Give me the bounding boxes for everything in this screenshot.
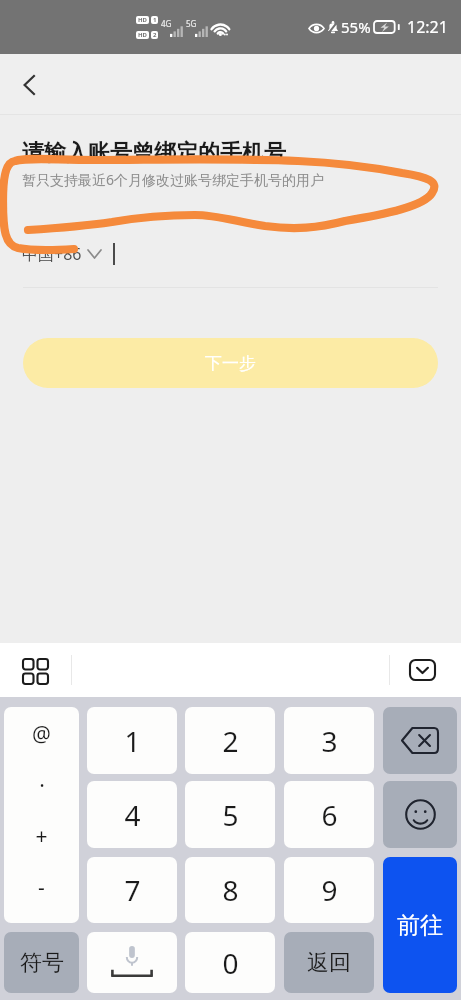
button[interactable]: @ <box>4 707 79 923</box>
staticText: 暂只支持最近6个月修改过账号绑定手机号的用户 <box>22 170 325 189</box>
button[interactable] <box>383 707 457 774</box>
button[interactable]: 中国+86 <box>22 243 101 265</box>
button[interactable]: 6 <box>284 781 374 848</box>
button[interactable]: 5 <box>185 781 275 848</box>
staticText: + <box>35 822 48 851</box>
staticText: 4 <box>124 796 141 834</box>
staticText: 12:21 <box>407 16 448 38</box>
staticText: 3 <box>321 722 338 760</box>
staticText: 8 <box>222 871 239 909</box>
staticText: 中国+86 <box>22 243 82 265</box>
button[interactable]: 4 <box>87 781 177 848</box>
staticText: 9 <box>321 871 338 909</box>
staticText: HD <box>138 31 147 39</box>
staticText: 55% <box>341 17 371 37</box>
button[interactable]: 7 <box>87 857 177 923</box>
button[interactable]: 8 <box>185 857 275 923</box>
staticText: 4G <box>161 18 172 29</box>
button[interactable] <box>383 781 457 848</box>
staticText: 2 <box>153 31 157 39</box>
staticText: HD <box>138 16 147 24</box>
staticText: 下一步 <box>205 353 256 374</box>
button[interactable]: 2 <box>185 707 275 774</box>
button[interactable]: 返回 <box>284 932 374 993</box>
button[interactable]: 3 <box>284 707 374 774</box>
staticText: 0 <box>222 944 239 982</box>
button[interactable] <box>87 932 177 993</box>
staticText: 符号 <box>20 949 64 977</box>
staticText: · <box>39 771 45 800</box>
button[interactable]: 前往 <box>383 857 457 993</box>
button[interactable]: 下一步 <box>23 338 438 388</box>
staticText: - <box>38 873 45 902</box>
staticText: 5G <box>186 18 197 29</box>
button[interactable]: 1 <box>87 707 177 774</box>
staticText: @ <box>32 720 51 749</box>
staticText: 请输入账号曾绑定的手机号 <box>22 139 286 167</box>
button[interactable]: Keyboard switch <box>14 650 54 690</box>
staticText: 5 <box>222 796 239 834</box>
staticText: 7 <box>124 871 141 909</box>
staticText: 1 <box>124 722 141 760</box>
button[interactable]: 9 <box>284 857 374 923</box>
button[interactable]: 0 <box>185 932 275 993</box>
button[interactable]: Back <box>10 65 50 105</box>
staticText: 6 <box>321 796 338 834</box>
staticText: 返回 <box>307 949 351 977</box>
staticText: 前往 <box>397 911 443 940</box>
staticText: 2 <box>222 722 239 760</box>
button[interactable]: Hide keyboard <box>405 653 439 687</box>
staticText: 1 <box>153 16 157 24</box>
button[interactable]: 符号 <box>4 932 79 993</box>
